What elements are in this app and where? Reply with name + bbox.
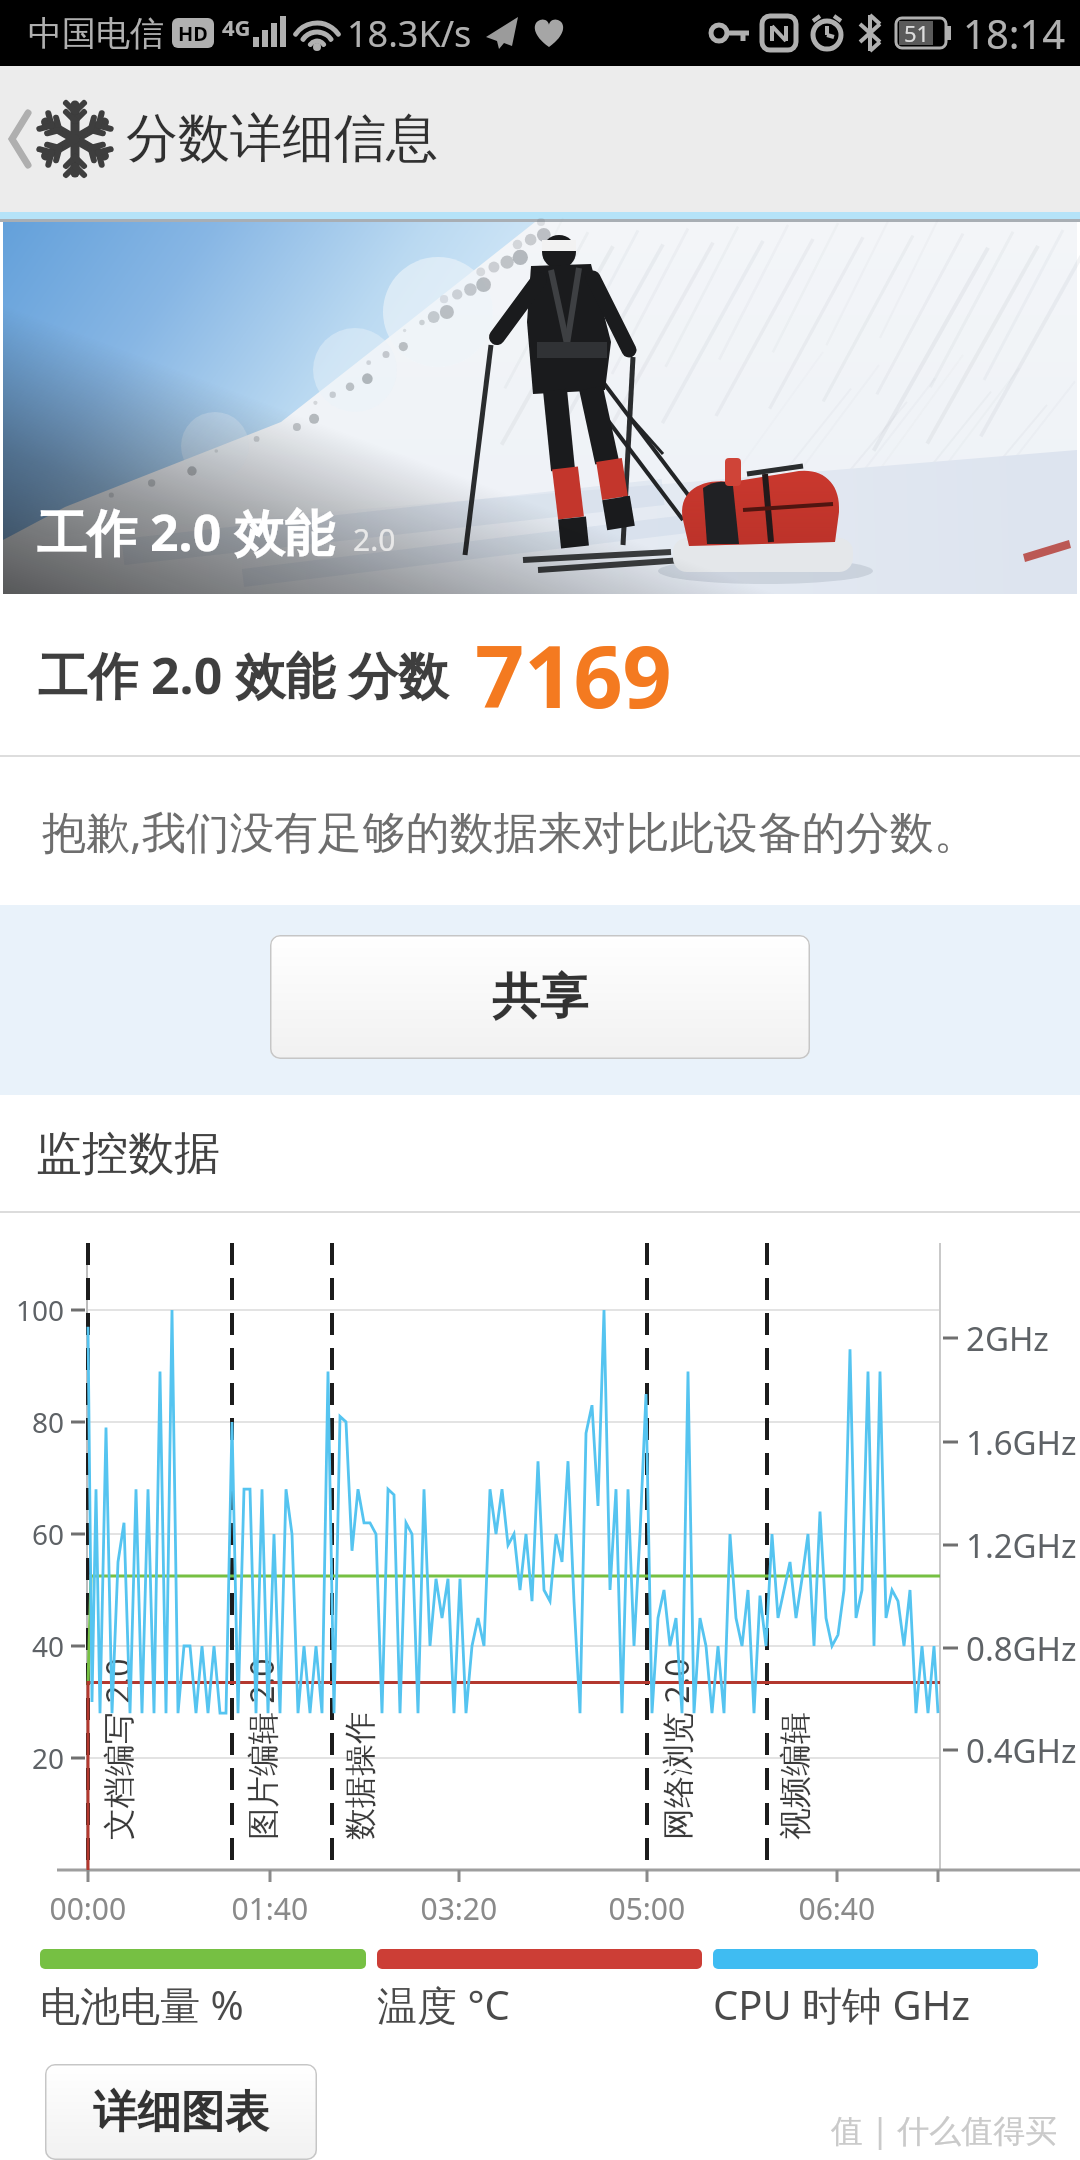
staticText: HD: [178, 20, 208, 47]
staticText: 监控数据: [36, 1125, 220, 1183]
button[interactable]: 共享: [270, 935, 810, 1059]
staticText: 共享: [492, 967, 588, 1027]
staticText: 2.0: [353, 519, 396, 560]
staticText: 工作 2.0 效能 分数: [38, 641, 449, 709]
staticText: 4G: [222, 12, 251, 42]
staticText: 温度 °C: [377, 1977, 510, 2032]
staticText: 值 | 什么值得买: [831, 2108, 1058, 2152]
staticText: 详细图表: [93, 2085, 269, 2140]
staticText: 7169: [475, 616, 672, 733]
staticText: 18.3K/s: [347, 9, 472, 58]
button[interactable]: 详细图表: [45, 2064, 317, 2160]
staticText: 中国电信: [28, 12, 164, 55]
staticText: 工作 2.0 效能: [37, 498, 335, 566]
staticText: 51: [904, 18, 930, 48]
button[interactable]: [8, 107, 34, 171]
staticText: CPU 时钟 GHz: [713, 1977, 971, 2032]
button[interactable]: [40, 104, 110, 174]
staticText: 分数详细信息: [126, 106, 438, 172]
staticText: 抱歉,我们没有足够的数据来对比此设备的分数。: [42, 801, 978, 861]
staticText: 18:14: [963, 6, 1066, 60]
staticText: 电池电量 %: [40, 1977, 244, 2032]
